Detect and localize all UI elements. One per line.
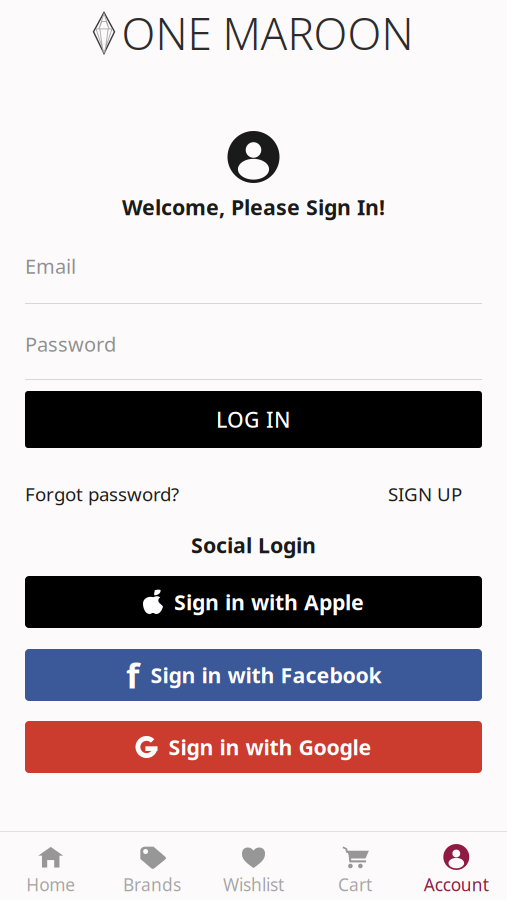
button[interactable]: Sign in with Google [25,721,482,773]
button[interactable]: Home [0,845,101,896]
staticText: Sign in with Google [168,733,371,761]
staticText: ONE MAROON [121,4,413,62]
staticText: f [126,652,139,698]
button[interactable]: Brands [101,845,203,896]
staticText: Brands [123,873,181,896]
button[interactable]: ONE MAROON home [93,0,413,57]
button[interactable]: LOG IN [25,391,482,448]
button[interactable]: Wishlist [203,845,304,896]
staticText: Wishlist [223,873,284,896]
button[interactable]: Forgot password? [25,482,179,506]
staticText: Cart [338,873,372,896]
staticText: Social Login [191,531,316,559]
staticText: LOG IN [216,405,291,434]
staticText: Forgot password? [25,482,179,506]
button[interactable]: Email [25,253,482,304]
staticText: Sign in with Facebook [150,661,381,689]
button[interactable]: Password [25,331,482,380]
staticText: Sign in with Apple [174,588,364,616]
button[interactable]: Sign in with Apple [25,576,482,628]
staticText: Password [25,331,116,357]
staticText: Home [26,873,75,896]
button[interactable]: SIGN UP [388,482,462,506]
staticText: Welcome, Please Sign In! [122,193,385,221]
button[interactable]: Cart [304,845,406,896]
button[interactable]: f [25,649,482,701]
staticText: Account [424,873,489,896]
staticText: Email [25,253,76,279]
button[interactable]: Account [406,845,507,896]
staticText: SIGN UP [388,482,462,506]
